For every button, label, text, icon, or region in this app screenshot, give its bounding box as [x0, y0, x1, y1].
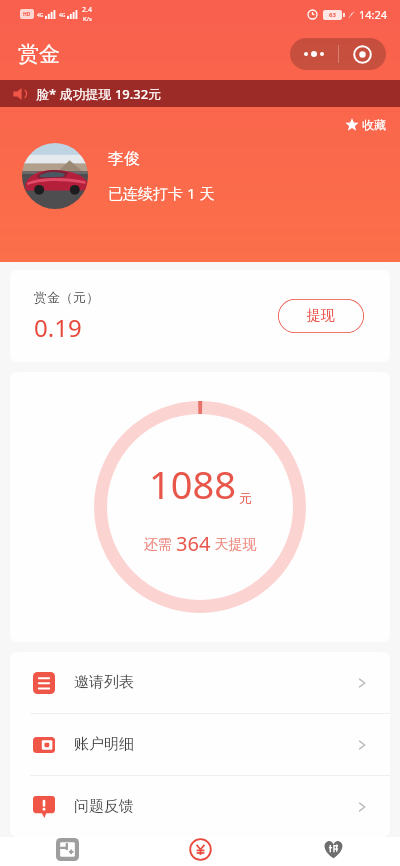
button[interactable]: 脸* 成功提现 19.32元 [0, 80, 400, 107]
button[interactable]: More options and target [290, 38, 386, 70]
button[interactable]: 赏金 [134, 837, 267, 866]
staticText: 0.19 [34, 311, 82, 344]
staticText: 收藏 [362, 117, 386, 132]
button[interactable]: 账户明细 [10, 714, 390, 775]
button[interactable]: 收藏 [345, 117, 386, 132]
staticText: 赏金 [18, 41, 60, 67]
staticText: 元 [239, 490, 252, 506]
staticText: 还需 [144, 534, 176, 553]
staticText: 提现 [307, 307, 335, 325]
staticText: 364 [176, 530, 211, 557]
staticText: 14:24 [359, 7, 388, 22]
staticText: 账户明细 [74, 735, 134, 754]
button[interactable]: 提现 [278, 299, 364, 333]
staticText: 天提现 [211, 534, 257, 553]
button[interactable]: 赏金（元） [10, 270, 390, 362]
button[interactable]: 问题反馈 [10, 776, 390, 837]
staticText: 脸* 成功提现 19.32元 [36, 85, 162, 103]
staticText: 赏金（元） [34, 289, 99, 305]
staticText: 4G [37, 12, 44, 19]
button[interactable]: 打卡 [0, 837, 134, 866]
staticText: 4G [59, 12, 66, 19]
button[interactable]: Profile avatar [22, 143, 88, 209]
staticText: 邀请列表 [74, 673, 134, 692]
staticText: 1088 [149, 458, 236, 510]
staticText: 已连续打卡 1 天 [108, 183, 215, 203]
staticText: K/s [83, 15, 92, 23]
staticText: 李俊 [108, 149, 140, 169]
button[interactable]: 邀请列表 [10, 652, 390, 713]
staticText: 问题反馈 [74, 797, 134, 816]
staticText: 63 [329, 11, 336, 19]
button[interactable]: 购物返利 [267, 837, 400, 866]
staticText: HD [23, 11, 31, 18]
staticText: 2.4 [82, 5, 92, 15]
